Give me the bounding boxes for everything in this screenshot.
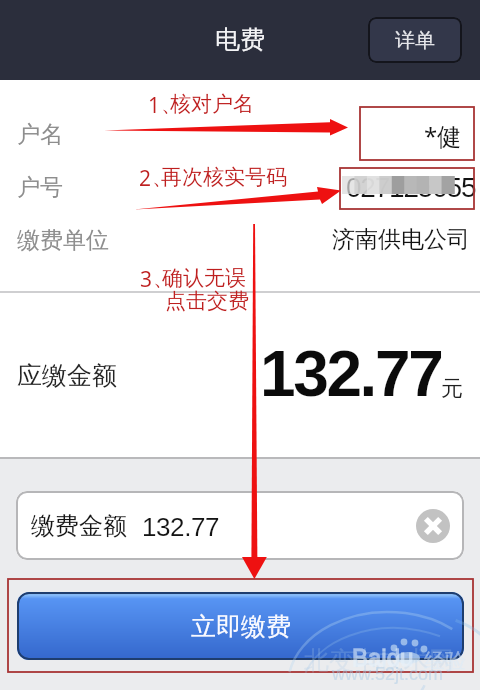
staticText: 3 — [140, 265, 153, 294]
staticText: 立即缴费 — [191, 611, 291, 642]
button[interactable]: Clear amount — [416, 509, 450, 543]
staticText: 132.77 — [142, 512, 220, 541]
staticText: 经验 — [424, 648, 466, 674]
staticText: 详单 — [395, 28, 435, 53]
staticText: 缴费金额 — [31, 511, 127, 541]
staticText: 元 — [441, 375, 463, 403]
staticText: 户号 — [17, 173, 63, 202]
staticText: *健 — [424, 119, 462, 152]
staticText: 再次核实号码 — [161, 164, 287, 190]
staticText: 北变电技术网 — [304, 645, 454, 676]
staticText: 、 — [153, 265, 162, 291]
staticText: 、 — [161, 91, 170, 117]
staticText: 2 — [139, 164, 152, 193]
staticText: 核对户名 — [170, 91, 254, 117]
staticText: 132.77 — [260, 338, 442, 410]
staticText: 应缴金额 — [17, 360, 117, 391]
button[interactable]: 立即缴费 — [17, 592, 464, 660]
staticText: Baidu — [352, 644, 414, 671]
staticText: 、 — [152, 164, 161, 190]
staticText: 电费 — [215, 24, 265, 55]
staticText: 济南供电公司 — [332, 225, 470, 254]
staticText: 点击交费 — [165, 288, 249, 314]
staticText: 1 — [148, 91, 161, 120]
button[interactable]: 缴费金额 — [16, 491, 464, 560]
staticText: 户名 — [17, 120, 63, 149]
staticText: 027125055 — [346, 172, 476, 203]
staticText: www.52jt.com — [332, 664, 444, 684]
staticText: 缴费单位 — [17, 226, 109, 255]
staticText: 确认无误 — [162, 265, 246, 291]
button[interactable]: 详单 — [368, 17, 462, 63]
